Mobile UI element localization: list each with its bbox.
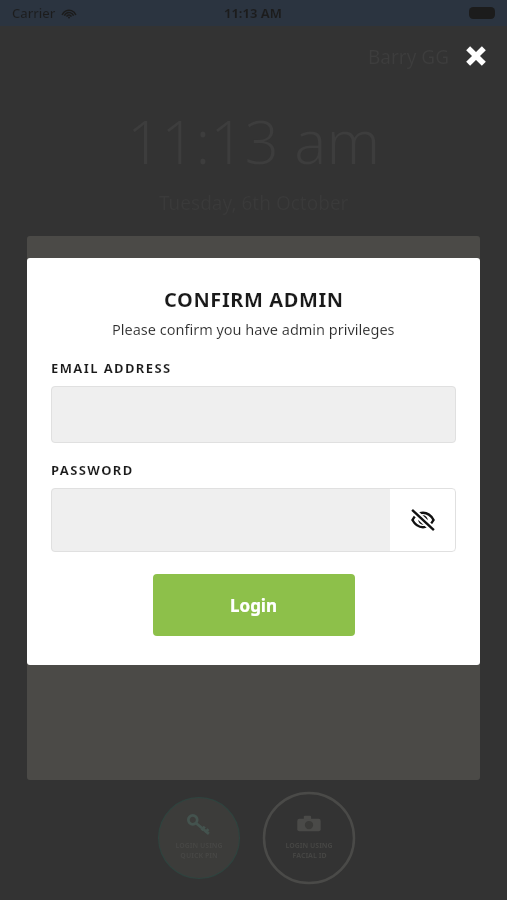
staticText: Please confirm you have admin privileges — [112, 319, 395, 339]
staticText: Carrier — [12, 4, 56, 22]
staticText: QUICK PIN — [180, 851, 218, 861]
staticText: EMAIL ADDRESS — [51, 359, 172, 377]
staticText: LOGIN USING — [175, 841, 223, 851]
button[interactable]: Login using quick pin — [158, 797, 240, 879]
button[interactable]: Login using facial ID — [262, 791, 356, 885]
button[interactable]: Close — [454, 34, 498, 78]
staticText: CONFIRM ADMIN — [164, 286, 344, 313]
staticText: 11:13 AM — [224, 4, 283, 22]
staticText: PASSWORD — [51, 461, 134, 479]
staticText: Login — [230, 594, 278, 617]
button[interactable]: Login — [153, 574, 355, 636]
staticText: FACIAL ID — [292, 851, 327, 861]
staticText: LOGIN USING — [285, 841, 333, 851]
button[interactable]: Show password — [390, 488, 456, 552]
